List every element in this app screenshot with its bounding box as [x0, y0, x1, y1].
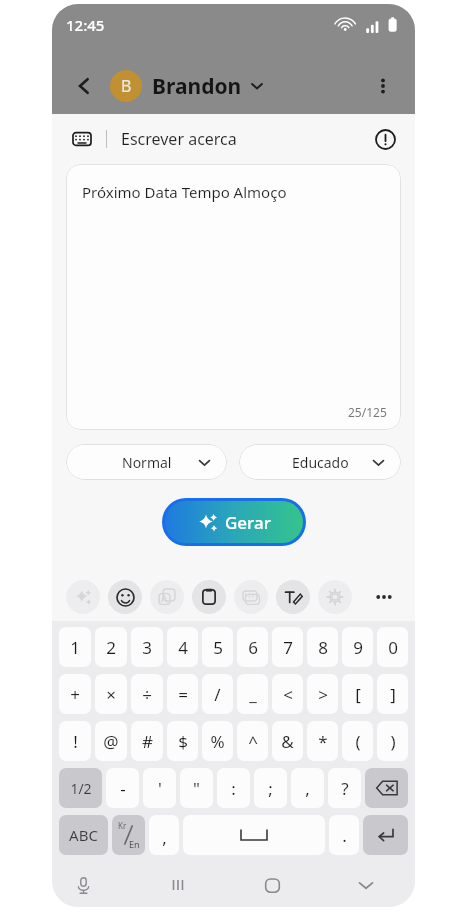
button[interactable]: Space: [183, 815, 325, 855]
staticText: 12:45: [66, 15, 105, 35]
button[interactable]: 3: [131, 627, 163, 667]
staticText: _: [249, 683, 257, 706]
button[interactable]: Home: [255, 868, 289, 902]
button[interactable]: AI suggestions: [66, 580, 100, 614]
button[interactable]: More: [367, 580, 401, 614]
staticText: En: [129, 838, 140, 850]
staticText: $: [178, 730, 188, 753]
button[interactable]: @: [95, 721, 127, 761]
staticText: Gerar: [225, 511, 271, 534]
button[interactable]: .: [329, 815, 359, 855]
button[interactable]: 5: [202, 627, 233, 667]
staticText: !: [73, 730, 78, 753]
button[interactable]: Voice input: [66, 868, 100, 902]
button[interactable]: Translate: [150, 580, 184, 614]
button[interactable]: ,: [149, 815, 179, 855]
button[interactable]: Back: [64, 66, 104, 106]
button[interactable]: ]: [377, 674, 408, 714]
staticText: @: [103, 730, 119, 753]
button[interactable]: -: [106, 768, 139, 808]
staticText: .: [342, 824, 347, 847]
button[interactable]: [: [342, 674, 373, 714]
button[interactable]: 8: [307, 627, 338, 667]
button[interactable]: Emoji: [108, 580, 142, 614]
staticText: ÷: [142, 683, 152, 706]
button[interactable]: ÷: [131, 674, 163, 714]
staticText: 1: [70, 636, 80, 659]
staticText: Escrever acerca: [121, 128, 237, 150]
staticText: #: [142, 730, 153, 753]
button[interactable]: Clipboard: [192, 580, 226, 614]
staticText: :: [231, 777, 236, 800]
staticText: 0: [388, 636, 398, 659]
staticText: Brandon: [152, 72, 242, 101]
staticText: >: [318, 683, 328, 706]
staticText: Normal: [122, 453, 172, 472]
button[interactable]: 6: [237, 627, 268, 667]
button[interactable]: Keyboard: [68, 125, 96, 153]
staticText: Educado: [292, 453, 349, 472]
staticText: 1/2: [70, 779, 92, 798]
button[interactable]: Settings: [318, 580, 352, 614]
button[interactable]: B: [108, 68, 266, 104]
button[interactable]: ×: [95, 674, 127, 714]
staticText: %: [210, 730, 225, 753]
button[interactable]: ;: [254, 768, 287, 808]
button[interactable]: 9: [342, 627, 373, 667]
button[interactable]: %: [202, 721, 233, 761]
staticText: <: [283, 683, 293, 706]
staticText: 2: [106, 636, 116, 659]
button[interactable]: $: [167, 721, 198, 761]
staticText: =: [178, 683, 188, 706]
button[interactable]: ABC: [59, 815, 108, 855]
button[interactable]: ': [143, 768, 176, 808]
button[interactable]: ): [377, 721, 408, 761]
button[interactable]: 2: [95, 627, 127, 667]
button[interactable]: Info: [371, 125, 399, 153]
button[interactable]: !: [59, 721, 91, 761]
button[interactable]: >: [307, 674, 338, 714]
button[interactable]: =: [167, 674, 198, 714]
staticText: +: [70, 683, 80, 706]
button[interactable]: Gerar: [165, 501, 303, 543]
button[interactable]: ?: [328, 768, 361, 808]
button[interactable]: Enter: [363, 815, 408, 855]
button[interactable]: Educado: [239, 444, 401, 480]
staticText: ,: [162, 826, 167, 849]
staticText: ]: [390, 683, 396, 706]
button[interactable]: Normal: [66, 444, 227, 480]
staticText: 3: [142, 636, 152, 659]
button[interactable]: Recent apps: [161, 868, 195, 902]
button[interactable]: /: [202, 674, 233, 714]
staticText: ;: [268, 777, 273, 800]
button[interactable]: Próximo Data Tempo Almoço: [66, 164, 401, 430]
button[interactable]: 4: [167, 627, 198, 667]
button[interactable]: (: [342, 721, 373, 761]
button[interactable]: 1: [59, 627, 91, 667]
button[interactable]: ^: [237, 721, 268, 761]
staticText: (: [355, 730, 361, 753]
staticText: 5: [213, 636, 223, 659]
staticText: *: [318, 730, 328, 753]
button[interactable]: 1/2: [59, 768, 102, 808]
staticText: 6: [248, 636, 258, 659]
button[interactable]: Keyboard modes: [234, 580, 268, 614]
button[interactable]: Backspace: [365, 768, 408, 808]
button[interactable]: 7: [272, 627, 303, 667]
button[interactable]: :: [217, 768, 250, 808]
staticText: ?: [341, 777, 349, 800]
button[interactable]: Handwriting: [276, 580, 310, 614]
button[interactable]: +: [59, 674, 91, 714]
button[interactable]: Hide keyboard: [349, 868, 383, 902]
button[interactable]: ": [180, 768, 213, 808]
button[interactable]: 0: [377, 627, 408, 667]
button[interactable]: &: [272, 721, 303, 761]
button[interactable]: <: [272, 674, 303, 714]
button[interactable]: More options: [363, 66, 403, 106]
button[interactable]: *: [307, 721, 338, 761]
button[interactable]: #: [131, 721, 163, 761]
staticText: ': [158, 777, 162, 800]
button[interactable]: ,: [291, 768, 324, 808]
button[interactable]: Change language: [112, 815, 145, 855]
button[interactable]: _: [237, 674, 268, 714]
